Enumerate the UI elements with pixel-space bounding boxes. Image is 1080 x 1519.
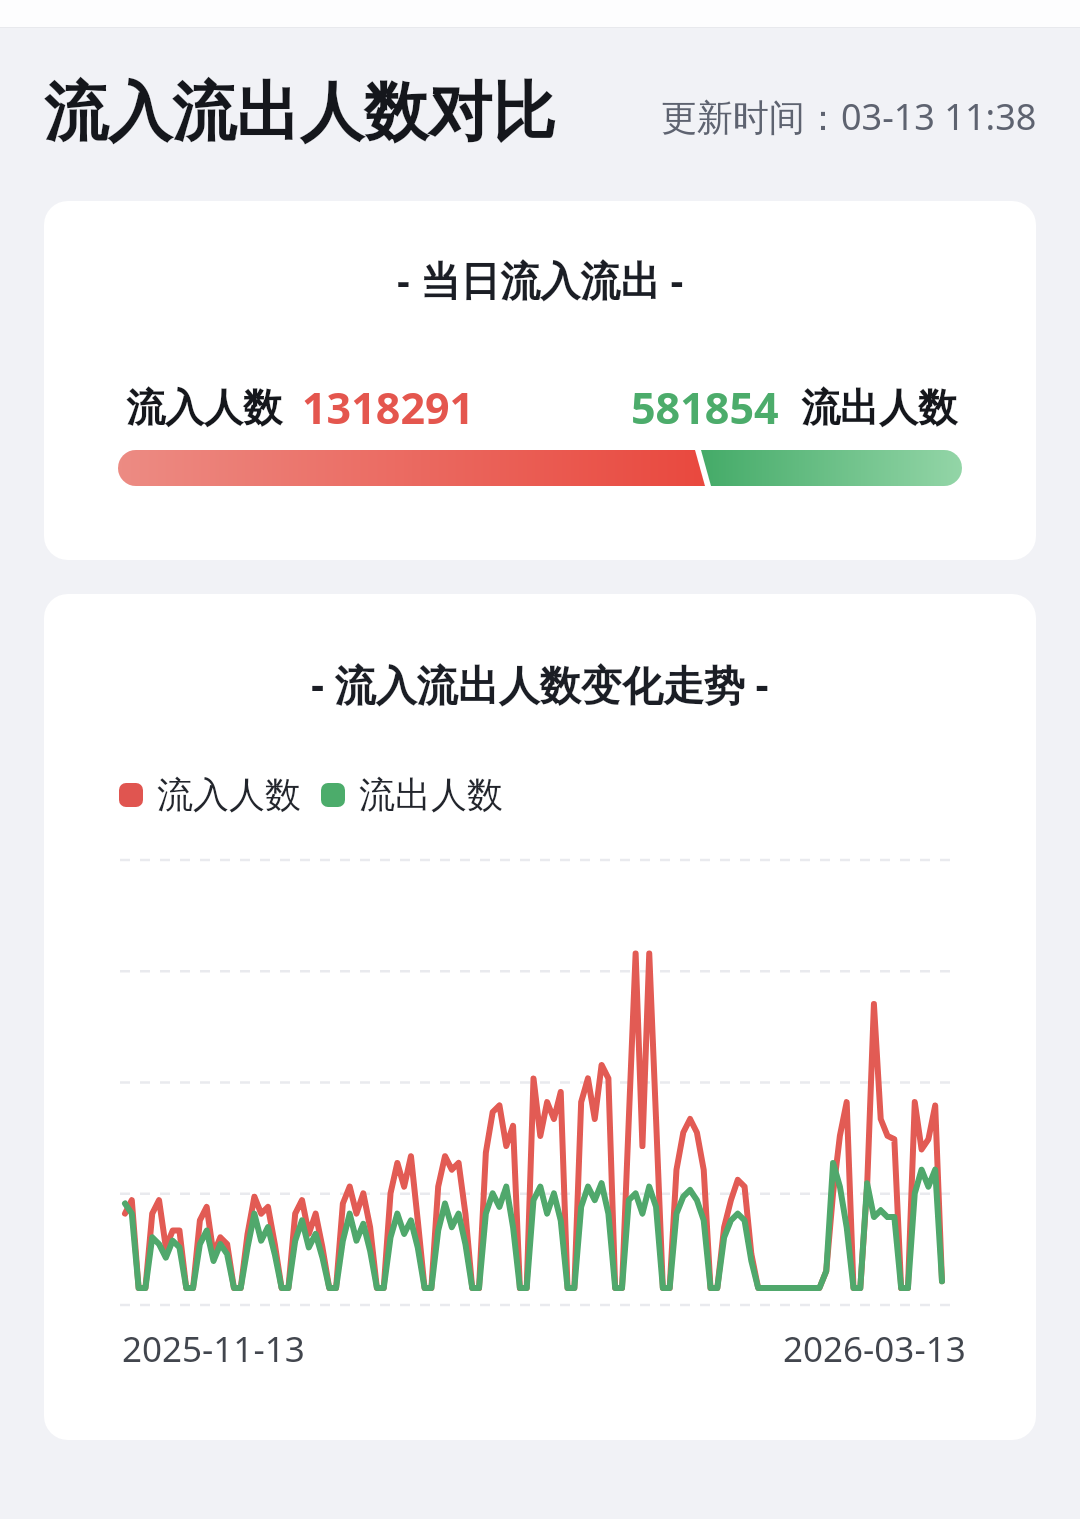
staticText: 流入流出人数对比 — [44, 72, 556, 153]
staticText: 流出人数 — [359, 772, 503, 817]
staticText: 2025-11-13 — [122, 1325, 305, 1373]
staticText: - 流入流出人数变化走势 - — [311, 656, 769, 712]
staticText: 581854 — [631, 378, 779, 437]
button[interactable]: 流出人数 — [321, 772, 503, 817]
button[interactable]: 流入人数 — [119, 772, 301, 817]
staticText: 流入人数 — [157, 772, 301, 817]
staticText: 流出人数 — [801, 383, 957, 432]
staticText: 更新时间：03-13 11:38 — [661, 92, 1037, 141]
staticText: 2026-03-13 — [783, 1325, 966, 1373]
staticText: - 当日流入流出 - — [397, 252, 684, 307]
staticText: 流入人数 — [126, 383, 282, 432]
staticText: 1318291 — [302, 378, 475, 437]
